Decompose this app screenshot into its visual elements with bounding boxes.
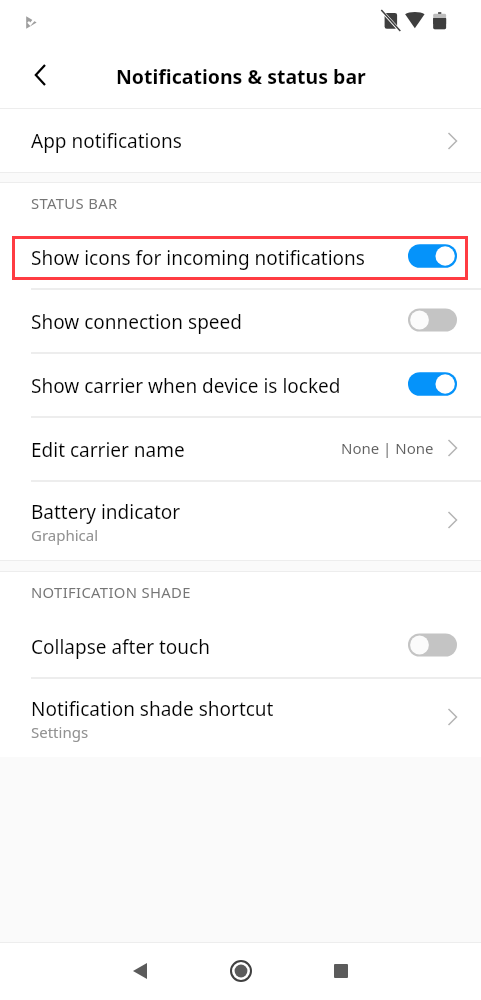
- button[interactable]: Collapse after touch: [0, 613, 481, 677]
- staticText: NOTIFICATION SHADE: [31, 582, 191, 602]
- staticText: Show icons for incoming notifications: [31, 245, 408, 271]
- staticText: Graphical: [31, 525, 99, 545]
- staticText: App notifications: [31, 128, 182, 154]
- staticText: Show connection speed: [31, 309, 408, 335]
- staticText: None | None: [341, 438, 434, 458]
- staticText: Show carrier when device is locked: [31, 373, 408, 399]
- button[interactable]: App notifications: [0, 109, 481, 172]
- button[interactable]: Edit carrier name: [0, 416, 481, 480]
- staticText: Collapse after touch: [31, 634, 408, 660]
- button[interactable]: Show carrier when device is locked: [0, 352, 481, 416]
- button[interactable]: Notification shade shortcut: [0, 677, 481, 757]
- button[interactable]: Recents: [312, 942, 372, 1000]
- staticText: Edit carrier name: [31, 437, 185, 463]
- staticText: Settings: [31, 722, 89, 742]
- button[interactable]: Show icons for incoming notifications: [0, 224, 481, 288]
- button[interactable]: Home: [211, 942, 271, 1000]
- staticText: Notifications & status bar: [116, 63, 366, 90]
- staticText: Battery indicator: [31, 499, 181, 525]
- button[interactable]: Battery indicator: [0, 480, 481, 560]
- button[interactable]: Show connection speed: [0, 288, 481, 352]
- staticText: Notification shade shortcut: [31, 696, 274, 722]
- button[interactable]: Back: [110, 942, 170, 1000]
- button[interactable]: Navigate up: [20, 57, 60, 97]
- staticText: STATUS BAR: [31, 193, 118, 213]
